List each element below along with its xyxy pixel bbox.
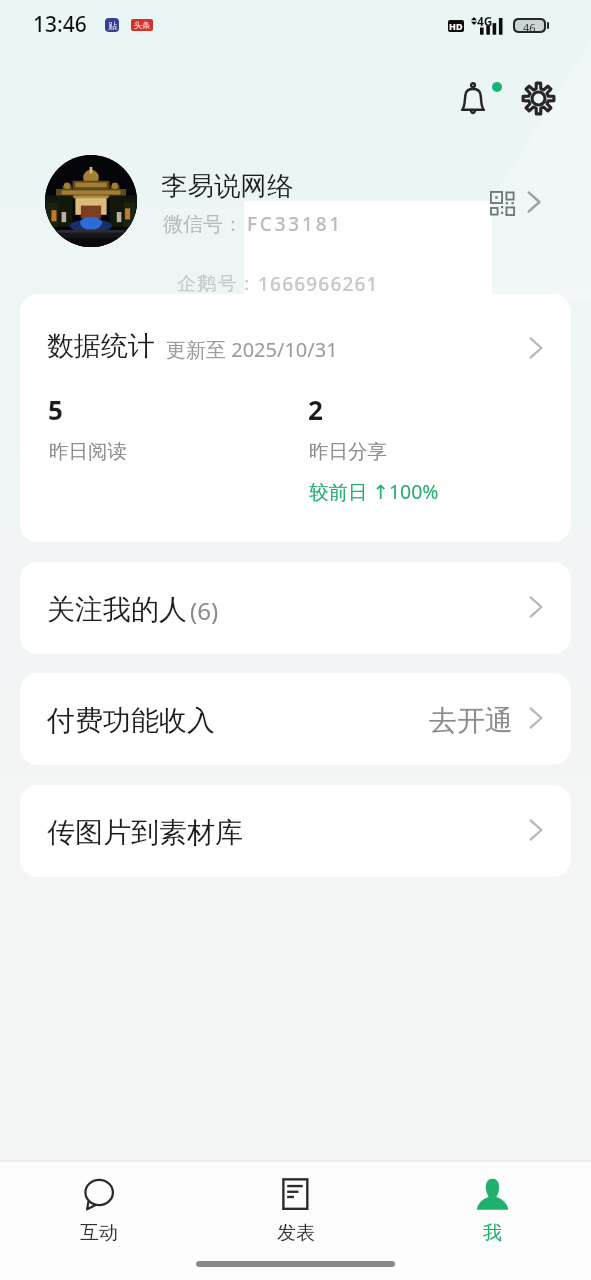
staticText: 我 <box>483 1221 502 1245</box>
button[interactable]: 互动 <box>0 1162 197 1280</box>
staticText: 传图片到素材库 <box>47 815 243 850</box>
button[interactable]: Settings <box>514 74 562 122</box>
button[interactable]: 付费功能收入 <box>20 673 571 765</box>
staticText: 13:46 <box>33 10 87 39</box>
button[interactable]: 李易说网络 <box>0 140 591 300</box>
staticText: 付费功能收入 <box>47 703 215 738</box>
staticText: 发表 <box>277 1221 315 1245</box>
staticText: 企鹅号： <box>177 272 258 296</box>
staticText: 较前日 ↑100% <box>309 478 439 505</box>
button[interactable]: 数据统计 <box>20 294 571 542</box>
staticText: FC33181 <box>247 211 344 237</box>
button[interactable]: 传图片到素材库 <box>20 785 571 877</box>
staticText: 关注我的人 <box>47 592 187 627</box>
staticText: 去开通 <box>429 703 513 738</box>
staticText: 5 <box>48 392 63 427</box>
staticText: 贴 <box>108 20 117 31</box>
staticText: 李易说网络 <box>161 169 294 202</box>
button[interactable]: 我 <box>394 1162 591 1280</box>
staticText: 头条 <box>134 20 150 30</box>
button[interactable]: 关注我的人 <box>20 562 571 654</box>
staticText: 数据统计 <box>47 329 155 363</box>
staticText: 互动 <box>80 1221 118 1245</box>
staticText: 46 <box>523 20 536 31</box>
button[interactable]: Notifications <box>445 74 501 122</box>
staticText: 昨日阅读 <box>49 439 127 464</box>
staticText: 1666966261 <box>258 271 379 297</box>
staticText: 昨日分享 <box>309 439 387 464</box>
button[interactable]: 发表 <box>197 1162 394 1280</box>
staticText: HD <box>449 20 463 32</box>
staticText: 2 <box>308 392 323 427</box>
staticText: 更新至 2025/10/31 <box>166 336 338 363</box>
staticText: 微信号： <box>163 212 243 237</box>
staticText: 4G <box>477 13 493 29</box>
staticText: (6) <box>190 594 219 627</box>
